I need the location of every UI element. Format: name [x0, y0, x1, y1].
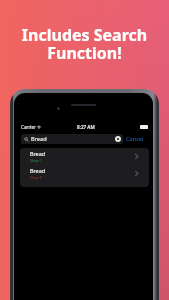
- staticText: Bread: [30, 150, 46, 157]
- staticText: 8:27 AM: [77, 124, 95, 130]
- staticText: Includes Search Function!: [6, 24, 163, 63]
- button[interactable]: Bread: [21, 134, 123, 144]
- staticText: Shop C: [30, 158, 42, 163]
- button[interactable]: Bread: [20, 148, 149, 165]
- staticText: Shop B: [30, 175, 42, 180]
- button[interactable]: Clear search: [115, 136, 121, 142]
- staticText: Cancel: [126, 135, 144, 143]
- button[interactable]: Bread: [20, 165, 149, 182]
- staticText: Bread: [31, 135, 47, 143]
- staticText: Bread: [30, 167, 46, 174]
- button[interactable]: Cancel: [125, 133, 145, 145]
- staticText: Carrier: [21, 124, 36, 130]
